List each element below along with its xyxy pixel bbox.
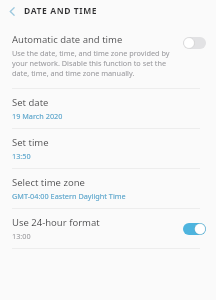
staticText: Set time [12, 136, 49, 149]
staticText: Set date [12, 96, 49, 109]
button[interactable]: Toggle on [183, 223, 206, 235]
staticText: Select time zone [12, 176, 85, 189]
staticText: 13:00 [12, 231, 31, 241]
button[interactable]: Back [0, 0, 24, 22]
button[interactable]: Use 24-hour format [0, 209, 216, 248]
staticText: Automatic date and time [12, 33, 123, 46]
staticText: GMT-04:00 Eastern Daylight Time [12, 191, 126, 201]
staticText: Use 24-hour format [12, 216, 100, 229]
button[interactable]: Set time [0, 129, 216, 168]
staticText: 19 March 2020 [12, 111, 63, 121]
button[interactable]: Select time zone [0, 169, 216, 208]
staticText: Use the date, time, and time zone provid… [12, 48, 177, 78]
button[interactable]: Automatic date and time [0, 31, 216, 82]
button[interactable]: Toggle off [183, 37, 206, 49]
staticText: DATE AND TIME [24, 5, 98, 17]
button[interactable]: Set date [0, 89, 216, 128]
staticText: 13:50 [12, 151, 31, 161]
